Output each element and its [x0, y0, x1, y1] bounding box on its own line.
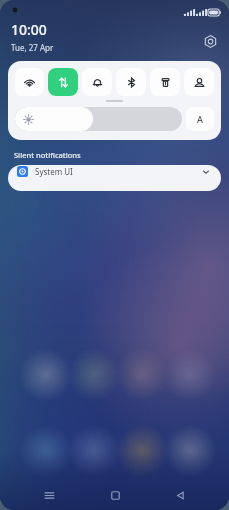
staticText: System UI	[35, 166, 73, 177]
button[interactable]: Recent apps	[32, 482, 66, 508]
button[interactable]: Mobile data	[48, 68, 78, 96]
staticText: 10:00	[11, 20, 47, 39]
staticText: Tue, 27 Apr	[11, 42, 54, 53]
button[interactable]: Wi-Fi	[15, 68, 44, 96]
staticText: Silent notifications	[14, 150, 81, 160]
button[interactable]: Brightness	[15, 107, 182, 131]
button[interactable]: Expand	[199, 165, 212, 178]
button[interactable]: Flashlight	[150, 68, 180, 96]
button[interactable]: Settings	[200, 31, 220, 51]
button[interactable]: Notifications	[82, 68, 112, 96]
button[interactable]: Location	[184, 68, 214, 96]
staticText: A	[197, 113, 203, 125]
button[interactable]: A	[186, 107, 214, 131]
button[interactable]: Home	[98, 482, 132, 508]
button[interactable]: System UI	[8, 165, 221, 191]
button[interactable]: Bluetooth	[116, 68, 146, 96]
button[interactable]: Back	[163, 482, 197, 508]
